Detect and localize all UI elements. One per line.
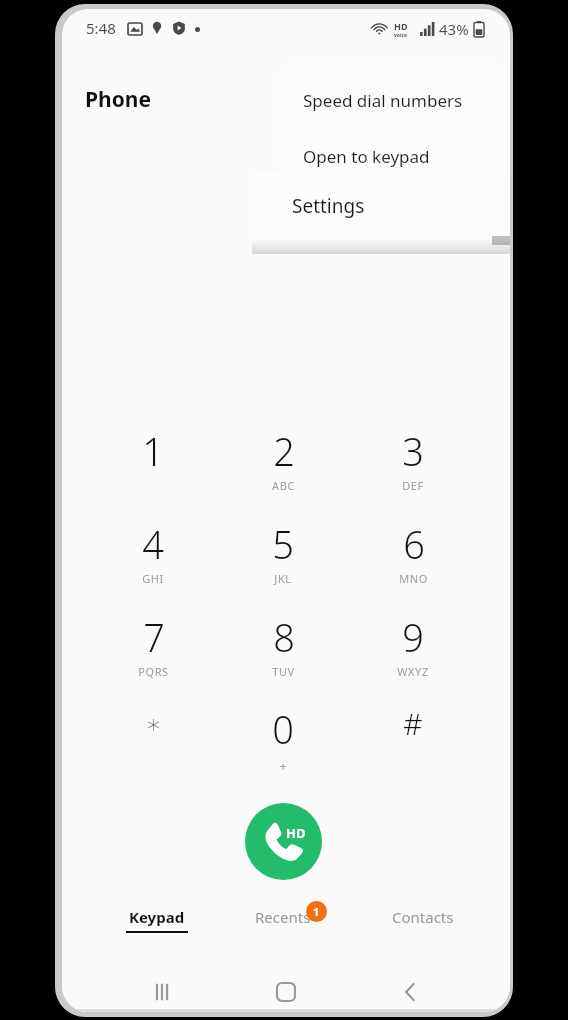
staticText: 1	[142, 425, 164, 477]
staticText: +	[279, 757, 288, 775]
staticText: 8	[273, 611, 295, 663]
staticText: ∗	[145, 709, 162, 739]
button[interactable]: Back	[382, 971, 438, 1012]
button[interactable]: Recents	[228, 907, 338, 951]
staticText: DEF	[402, 478, 424, 493]
staticText: 43%	[439, 19, 469, 39]
button[interactable]: 1	[108, 421, 198, 505]
staticText: 2	[273, 425, 295, 477]
staticText: JKL	[274, 571, 292, 586]
staticText: 9	[402, 611, 424, 663]
staticText: #	[403, 703, 423, 744]
button[interactable]: 3	[368, 421, 458, 505]
staticText: Recents	[255, 907, 311, 927]
staticText: 0	[272, 703, 294, 755]
staticText: MNO	[399, 571, 428, 586]
staticText: voice	[394, 32, 408, 39]
button[interactable]: #	[368, 699, 458, 783]
staticText: WXYZ	[397, 664, 429, 679]
staticText: Keypad	[129, 907, 185, 927]
button[interactable]: 9	[368, 607, 458, 691]
staticText: Open to keypad	[303, 145, 430, 168]
staticText: Phone	[85, 85, 152, 114]
staticText: PQRS	[138, 664, 169, 679]
staticText: 3	[402, 425, 424, 477]
button[interactable]: Open to keypad	[278, 128, 510, 184]
staticText: ABC	[272, 478, 295, 493]
button[interactable]: Call	[245, 803, 322, 880]
staticText: TUV	[272, 664, 295, 679]
button[interactable]: 4	[108, 514, 198, 598]
button[interactable]: Keypad	[102, 907, 212, 951]
staticText: GHI	[142, 571, 164, 586]
button[interactable]: 2	[238, 421, 328, 505]
staticText: HD	[394, 20, 408, 32]
staticText: Contacts	[392, 907, 454, 927]
staticText: 5:48	[86, 18, 116, 38]
staticText: Settings	[292, 193, 365, 219]
button[interactable]: Speed dial numbers	[278, 72, 510, 128]
button[interactable]: 0	[238, 699, 328, 783]
button[interactable]: 6	[368, 514, 458, 598]
button[interactable]: 8	[238, 607, 328, 691]
button[interactable]: ∗	[108, 699, 198, 783]
button[interactable]: Settings	[254, 172, 510, 240]
staticText: 4	[142, 518, 164, 570]
button[interactable]: Contacts	[368, 907, 478, 951]
staticText: 5	[272, 518, 294, 570]
button[interactable]: 7	[108, 607, 198, 691]
button[interactable]: Recents	[134, 971, 190, 1012]
staticText: 6	[403, 518, 425, 570]
staticText: 7	[143, 611, 165, 663]
staticText: HD	[286, 824, 306, 842]
staticText: Speed dial numbers	[303, 89, 463, 112]
button[interactable]: Home	[258, 971, 314, 1012]
button[interactable]: 5	[238, 514, 328, 598]
staticText: 1	[313, 904, 320, 919]
